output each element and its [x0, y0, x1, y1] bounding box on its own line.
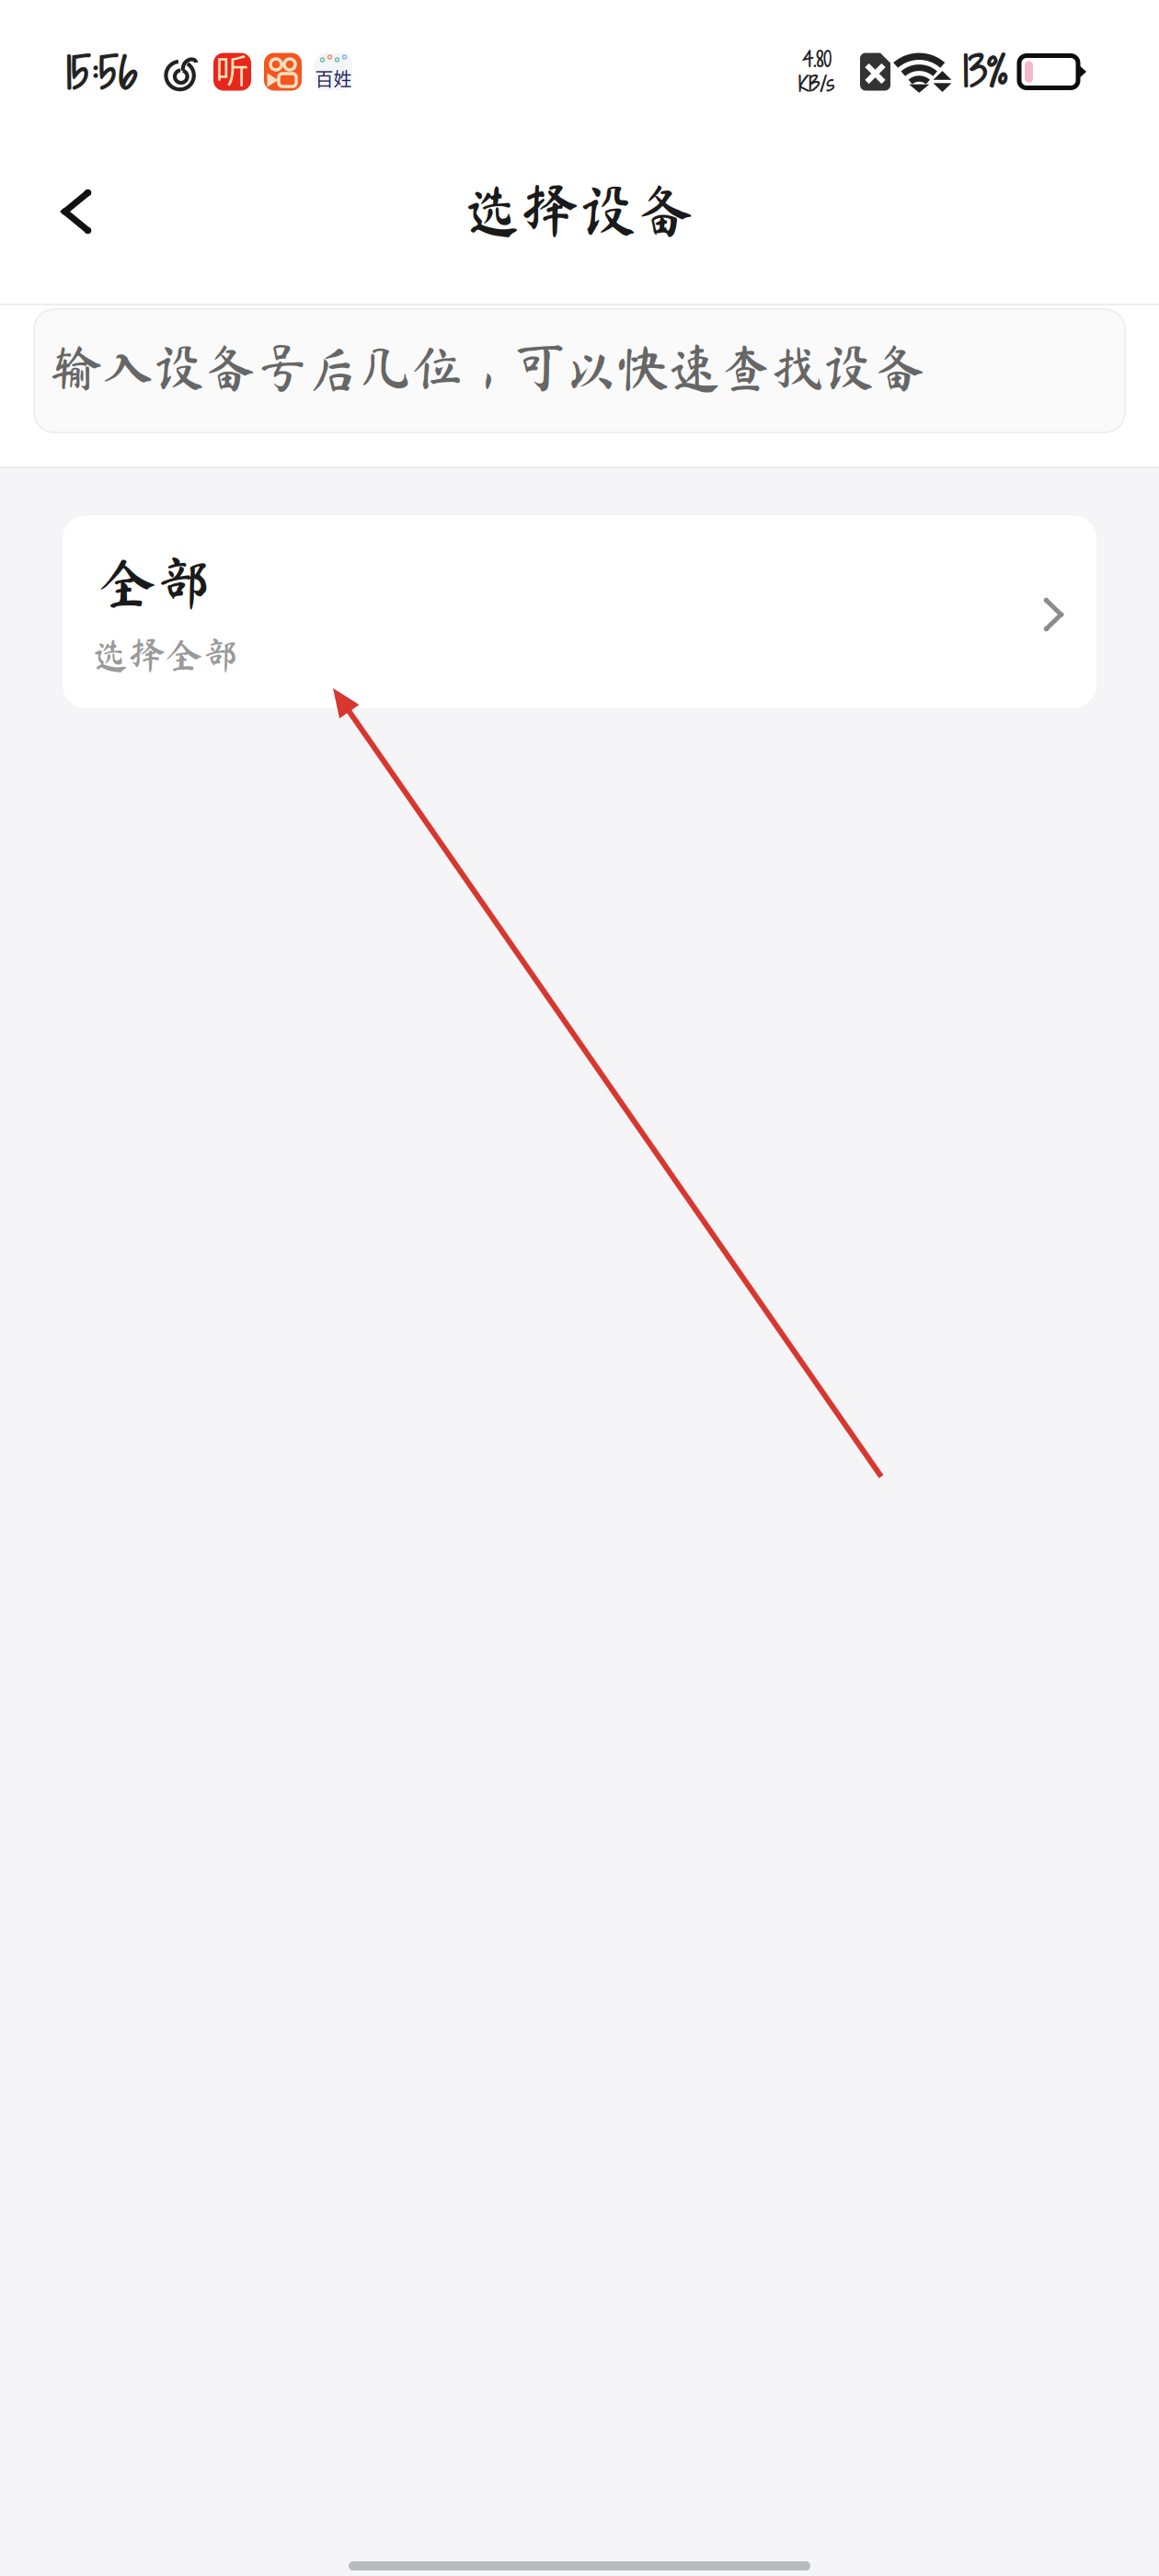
staticText: 4.80	[802, 45, 831, 74]
staticText: 选择设备	[464, 181, 695, 239]
staticText: 全部	[99, 554, 212, 611]
button[interactable]: 全部	[63, 515, 1096, 708]
button[interactable]: 返回	[32, 172, 120, 260]
staticText: 输入设备号后几位，可以快速查找设备	[51, 341, 926, 393]
staticText: 13%	[962, 42, 1006, 101]
staticText: 听	[216, 45, 249, 93]
staticText: KB/s	[798, 70, 834, 98]
staticText: 选择全部	[92, 636, 239, 673]
button[interactable]: 输入设备号后几位，可以快速查找设备	[34, 309, 1125, 432]
staticText: 百姓	[315, 65, 352, 92]
staticText: 15:56	[65, 43, 136, 104]
